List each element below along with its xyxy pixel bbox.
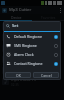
button[interactable]: mp3 music 15 xyxy=(0,76,64,87)
staticText: 02:34 xyxy=(11,72,19,76)
staticText: 02:33 xyxy=(11,61,19,65)
button[interactable]: mp3 music 12 xyxy=(0,43,64,54)
staticText: SMS Ringtone xyxy=(14,43,37,48)
button[interactable]: App icon xyxy=(2,8,7,13)
button[interactable]: mp3 music 14 xyxy=(0,65,64,76)
staticText: 02:32 xyxy=(11,50,19,54)
staticText: OK xyxy=(16,73,21,78)
button[interactable]: mp3 music 11 xyxy=(0,32,64,43)
staticText: Default Ringtone xyxy=(14,34,42,39)
staticText: Favorites xyxy=(41,15,56,20)
staticText: Cancel xyxy=(41,73,52,78)
button[interactable]: Contact Ringtone xyxy=(3,59,61,68)
staticText: mp3 music 13 xyxy=(11,55,36,60)
button[interactable]: Default Ringtone xyxy=(3,32,61,41)
button[interactable]: mp3 music 13 xyxy=(0,54,64,65)
button[interactable]: Device xyxy=(0,14,32,20)
staticText: mp3 music 10 xyxy=(11,22,36,27)
button[interactable]: mp3 music 10 xyxy=(0,21,64,32)
staticText: Set xyxy=(12,23,19,29)
staticText: Contact Ringtone xyxy=(14,61,43,66)
staticText: mp3 music 11 xyxy=(11,33,36,38)
staticText: mp3 music 15 xyxy=(11,77,36,82)
button[interactable]: OK xyxy=(5,72,31,78)
button[interactable]: Cancel xyxy=(33,72,59,78)
staticText: 02:30 xyxy=(11,28,19,32)
staticText: Alarm Clock xyxy=(14,52,34,57)
staticText: Mp3 Cutter xyxy=(9,7,32,13)
staticText: 02:35 xyxy=(11,83,19,87)
staticText: Device xyxy=(11,15,22,20)
button[interactable]: More options xyxy=(59,8,62,13)
button[interactable]: Alarm Clock xyxy=(3,50,61,59)
button[interactable]: SMS Ringtone xyxy=(3,41,61,50)
staticText: mp3 music 12 xyxy=(11,44,36,49)
